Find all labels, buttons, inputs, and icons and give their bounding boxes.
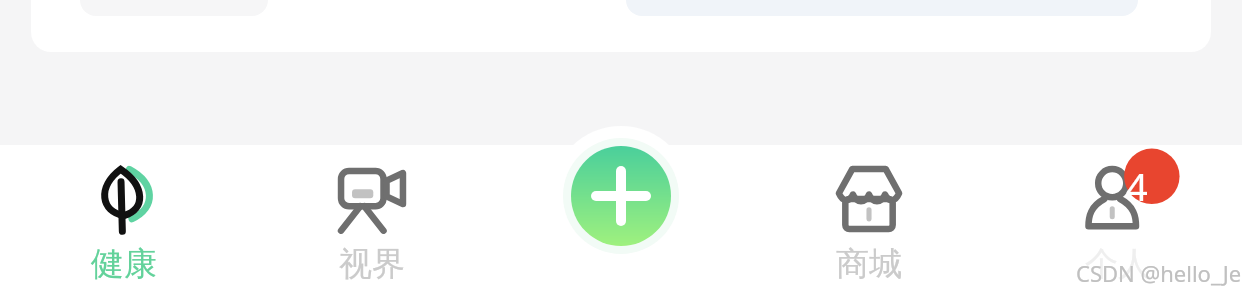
staticText: 视界 xyxy=(339,243,405,285)
staticText: CSDN @hello_Jesse xyxy=(1076,258,1242,288)
staticText: 个人 xyxy=(1085,243,1151,285)
staticText: 4 xyxy=(1126,160,1148,212)
button[interactable]: 商城 xyxy=(744,145,993,291)
staticText: 健康 xyxy=(91,243,157,285)
button[interactable]: 健康 xyxy=(0,145,248,291)
button[interactable]: 视界 xyxy=(248,145,496,291)
button[interactable]: 4 xyxy=(993,145,1242,291)
button[interactable]: Add xyxy=(551,126,691,266)
staticText: 商城 xyxy=(836,243,902,285)
